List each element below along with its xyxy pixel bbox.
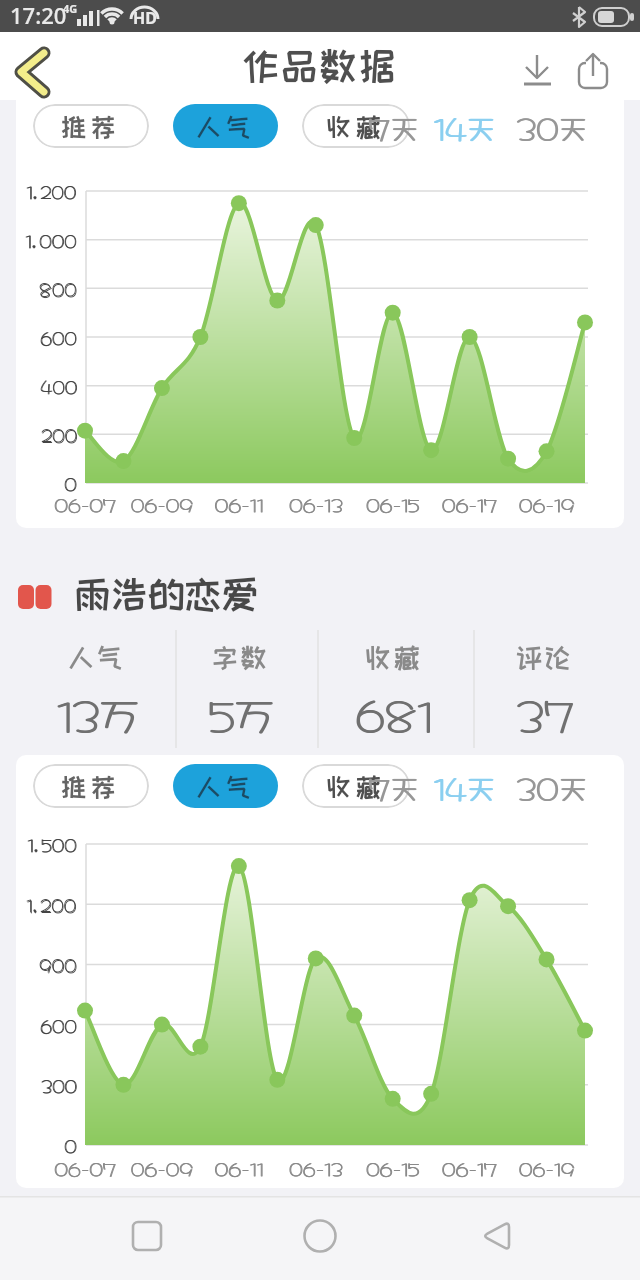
staticText: 30天 xyxy=(517,106,588,147)
button[interactable]: 7天 xyxy=(368,764,418,808)
staticText: 收藏 xyxy=(365,643,423,671)
staticText: 人气 xyxy=(68,643,126,671)
staticText: 评论 xyxy=(516,643,574,671)
staticText: 雨浩的恋爱 xyxy=(74,574,258,614)
staticText: 7天 xyxy=(368,106,418,147)
staticText: 人气 xyxy=(196,113,256,140)
button[interactable]: 雨浩的恋爱 xyxy=(74,568,258,620)
staticText: 推荐 xyxy=(61,113,121,140)
staticText: 收藏 xyxy=(326,113,386,140)
staticText: 30天 xyxy=(517,766,588,807)
staticText: 7天 xyxy=(369,766,419,807)
button[interactable]: 7天 xyxy=(368,104,418,148)
staticText: 推荐 xyxy=(61,773,121,800)
staticText: 13万 xyxy=(56,684,139,736)
button[interactable]: 人气 xyxy=(17,635,177,679)
staticText: 14天 xyxy=(433,106,495,147)
button[interactable]: 评论 xyxy=(465,635,625,679)
button[interactable] xyxy=(570,44,614,88)
staticText: 37 xyxy=(516,684,574,736)
staticText: 681 xyxy=(356,684,434,736)
staticText: 37 xyxy=(517,684,575,736)
button[interactable] xyxy=(0,1196,214,1280)
button[interactable]: 30天 xyxy=(516,764,587,808)
button[interactable]: 人气 xyxy=(173,104,278,148)
staticText: 人气 xyxy=(196,773,256,800)
button[interactable]: 14天 xyxy=(433,764,495,808)
staticText: 字数 xyxy=(212,643,270,671)
staticText: 收藏 xyxy=(326,773,386,800)
button[interactable]: 收藏 xyxy=(302,764,410,808)
button[interactable] xyxy=(214,1196,427,1280)
button[interactable]: 30天 xyxy=(516,104,587,148)
staticText: 7天 xyxy=(369,106,419,147)
button[interactable]: 人气 xyxy=(173,764,278,808)
staticText: 681 xyxy=(355,684,433,736)
button[interactable]: 收藏 xyxy=(314,635,474,679)
staticText: 13万 xyxy=(57,684,140,736)
button[interactable]: 字数 xyxy=(161,635,321,679)
staticText: 30天 xyxy=(516,766,587,807)
staticText: 作品数据 xyxy=(242,46,398,86)
button[interactable]: 推荐 xyxy=(33,764,149,808)
staticText: 14天 xyxy=(434,766,496,807)
staticText: 5万 xyxy=(208,684,274,736)
staticText: 30天 xyxy=(516,106,587,147)
button[interactable]: 14天 xyxy=(433,104,495,148)
staticText: 14天 xyxy=(433,766,495,807)
button[interactable]: 收藏 xyxy=(302,104,410,148)
staticText: 5万 xyxy=(209,684,275,736)
button[interactable] xyxy=(8,42,56,90)
staticText: 14天 xyxy=(434,106,496,147)
staticText: 7天 xyxy=(368,766,418,807)
button[interactable] xyxy=(515,44,559,88)
button[interactable]: 推荐 xyxy=(33,104,149,148)
button[interactable] xyxy=(427,1196,640,1280)
